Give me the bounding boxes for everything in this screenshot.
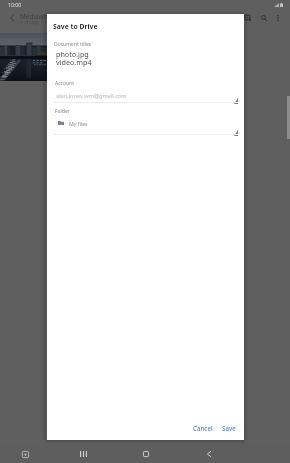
staticText: Mediawn	[20, 12, 48, 21]
button[interactable]: Save	[217, 418, 240, 437]
button[interactable]: Search	[255, 9, 273, 27]
button[interactable]: Recent apps	[74, 445, 92, 463]
staticText: My files	[69, 120, 88, 127]
staticText: Folder	[55, 108, 70, 115]
button[interactable]: Folder	[47, 108, 244, 134]
staticText: 10:00	[8, 1, 22, 8]
staticText: Account	[55, 80, 75, 87]
staticText: photo.jpg	[56, 49, 89, 59]
button[interactable]: Back	[4, 10, 20, 26]
button[interactable]: Home	[137, 445, 155, 463]
staticText: alan.jones.wm@gmail.com	[56, 92, 127, 100]
staticText: Save to Drive	[53, 22, 98, 31]
button[interactable]: Hide keyboard	[16, 445, 34, 463]
button[interactable]: Cancel	[188, 418, 218, 437]
staticText: Save	[222, 424, 236, 432]
staticText: Document titles	[54, 41, 92, 48]
button[interactable]: Account	[47, 80, 244, 102]
staticText: video.mp4	[56, 57, 92, 67]
staticText: 1 image 1 video	[20, 19, 58, 26]
button[interactable]: More options	[269, 9, 287, 27]
button[interactable]: Back	[200, 445, 218, 463]
staticText: Cancel	[193, 424, 213, 432]
button[interactable]: Add to album	[239, 9, 257, 27]
